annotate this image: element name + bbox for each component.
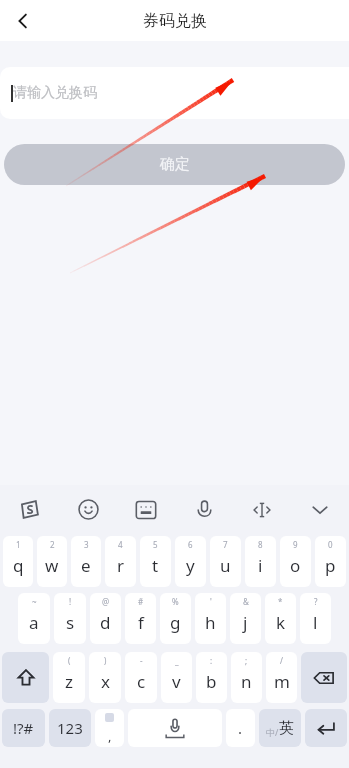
staticText: . [238,718,243,738]
staticText: w [45,554,59,577]
staticText: 0 [328,539,333,550]
staticText: 券码兑换 [143,11,207,31]
staticText: q [13,554,24,577]
staticText: k [276,611,286,634]
button[interactable]: 4 [105,536,136,587]
staticText: ( [68,655,71,666]
staticText: !?# [13,718,34,738]
button[interactable]: 0 [315,536,346,587]
staticText: 8 [258,539,263,550]
staticText: x [101,670,110,693]
button[interactable]: Hide keyboard [291,485,349,534]
button[interactable]: Cursor move [233,485,291,534]
button[interactable]: 6 [175,536,206,587]
button[interactable]: 中/ [259,709,301,747]
button[interactable]: * [265,593,296,644]
staticText: 5 [153,539,158,550]
staticText: s [66,611,75,634]
staticText: v [172,670,181,693]
button[interactable]: Voice input [128,709,222,747]
staticText: & [243,596,249,607]
staticText: h [205,611,216,634]
button[interactable]: Keyboard layout [117,485,175,534]
staticText: 英 [279,719,294,738]
button[interactable]: ? [300,593,331,644]
button[interactable]: ~ [18,593,50,644]
button[interactable]: 3 [71,536,101,587]
button[interactable]: ' [195,593,226,644]
button[interactable]: # [125,593,156,644]
button[interactable]: 2 [37,536,67,587]
staticText: ' [210,596,212,607]
button[interactable]: - [125,652,157,703]
button[interactable]: ) [89,652,121,703]
button[interactable]: 请输入兑换码 [0,67,349,119]
staticText: g [170,611,181,634]
button[interactable]: _ [161,652,192,703]
staticText: 请输入兑换码 [13,84,97,102]
button[interactable]: 7 [210,536,241,587]
button[interactable]: 9 [280,536,311,587]
staticText: 中/ [266,726,279,738]
button[interactable]: Voice input [175,485,233,534]
staticText: a [29,611,39,634]
button[interactable]: Emoji [59,485,117,534]
staticText: z [65,670,73,693]
button[interactable]: 123 [49,709,91,747]
staticText: p [325,554,336,577]
button[interactable]: 5 [140,536,171,587]
staticText: * [278,596,283,607]
button[interactable]: Back [4,2,42,40]
button[interactable]: Sogou input [0,485,59,534]
button[interactable]: ( [53,652,85,703]
staticText: : [210,655,213,666]
button[interactable]: : [196,652,227,703]
staticText: 123 [57,718,83,738]
button[interactable]: Enter [305,709,347,747]
staticText: l [313,611,318,634]
button[interactable]: @ [90,593,121,644]
staticText: , [108,727,112,745]
staticText: ; [245,655,248,666]
staticText: @ [102,596,110,607]
button[interactable]: / [266,652,297,703]
staticText: 9 [293,539,298,550]
staticText: u [220,554,231,577]
staticText: y [186,554,195,577]
staticText: j [243,611,248,634]
staticText: 2 [50,539,55,550]
staticText: 确定 [160,155,190,174]
staticText: 7 [223,539,228,550]
button[interactable]: 1 [3,536,33,587]
button[interactable]: 确定 [4,144,345,185]
staticText: 1 [16,539,21,550]
staticText: ~ [32,596,37,607]
button[interactable]: Period [226,709,255,747]
staticText: n [241,670,252,693]
button[interactable]: Comma [95,709,124,747]
staticText: f [138,611,144,634]
button[interactable]: % [160,593,191,644]
staticText: ? [314,596,318,607]
staticText: o [290,554,301,577]
staticText: i [258,554,263,577]
button[interactable]: Shift [2,652,49,703]
staticText: ) [104,655,107,666]
button[interactable]: !?# [2,709,45,747]
staticText: # [138,596,144,607]
staticText: 3 [84,539,89,550]
staticText: / [280,655,283,666]
staticText: 4 [118,539,123,550]
button[interactable]: ! [54,593,86,644]
staticText: b [206,670,217,693]
button[interactable]: & [230,593,261,644]
staticText: t [152,554,159,577]
button[interactable]: Delete [301,652,347,703]
staticText: m [274,670,290,693]
staticText: e [81,554,91,577]
button[interactable]: 8 [245,536,276,587]
staticText: - [140,655,143,666]
button[interactable]: ; [231,652,262,703]
staticText: _ [175,655,179,666]
staticText: r [117,554,125,577]
